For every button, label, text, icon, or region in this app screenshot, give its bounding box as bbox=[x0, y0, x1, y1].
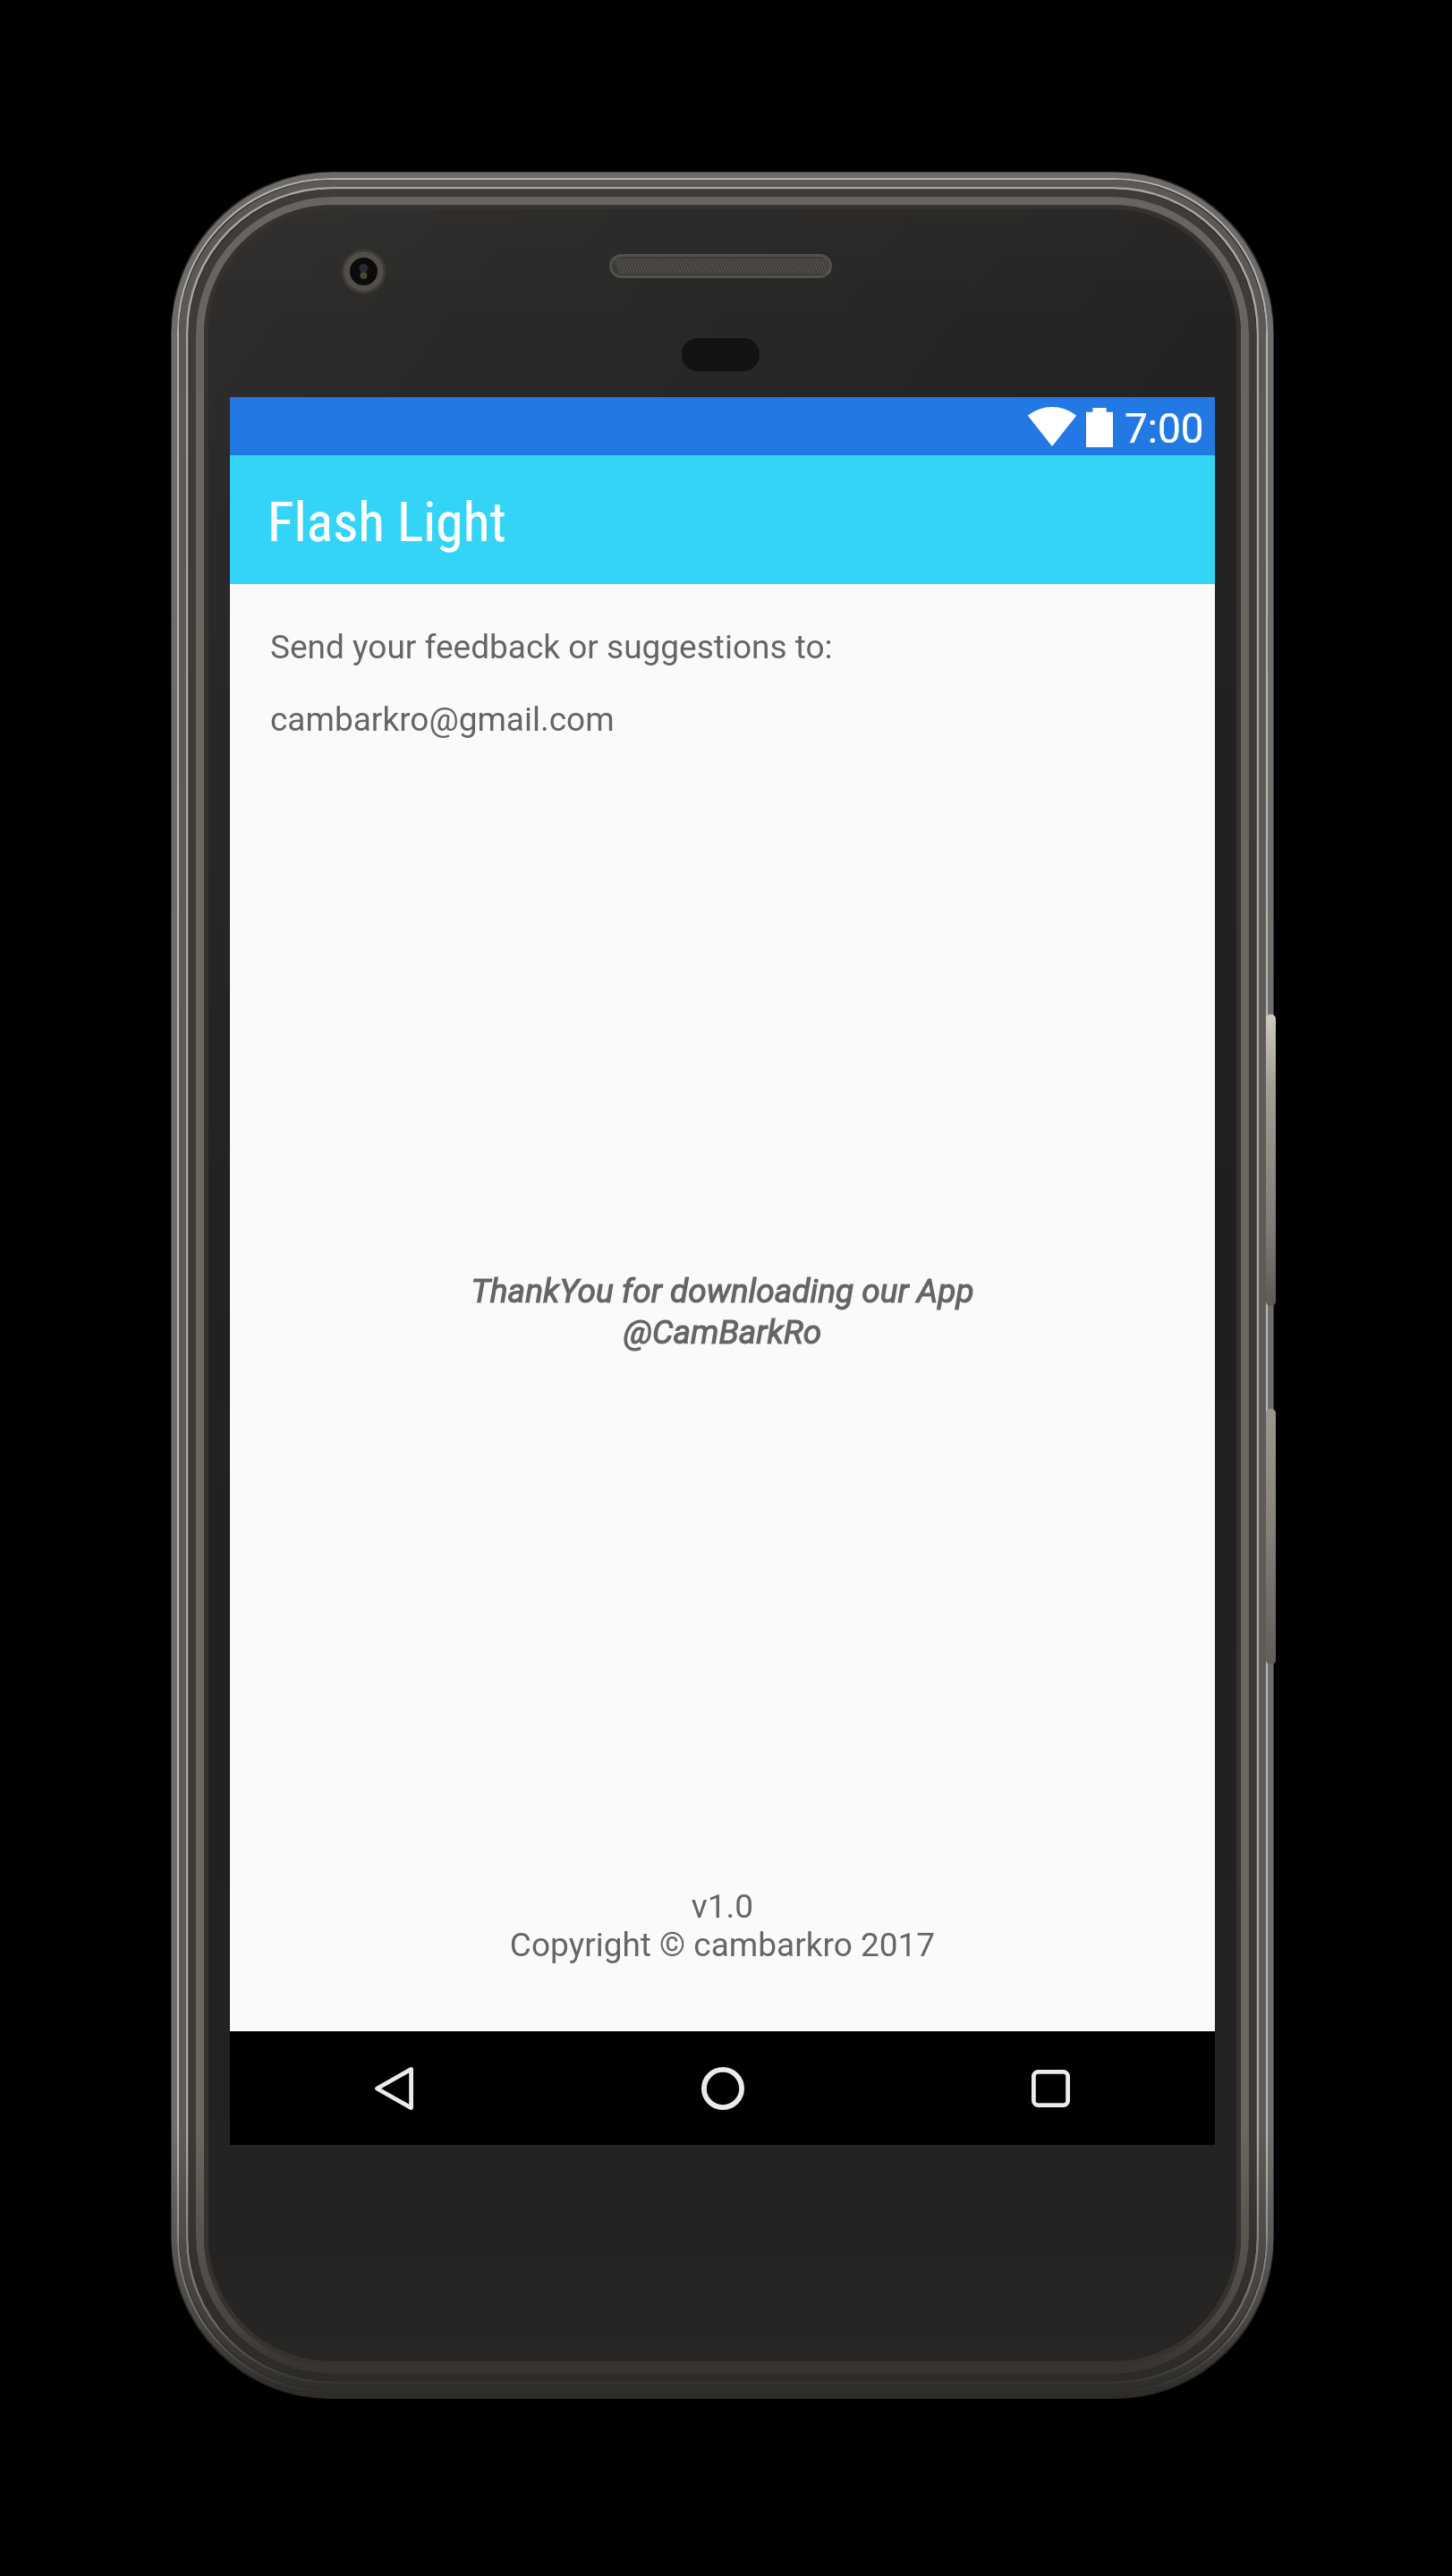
button[interactable]: Recent apps bbox=[887, 2031, 1215, 2145]
other: Wi-Fi signal bbox=[1028, 407, 1076, 446]
staticText: 7:00 bbox=[1125, 404, 1204, 453]
button[interactable]: cambarkro@gmail.com bbox=[261, 693, 624, 746]
button[interactable]: Back bbox=[230, 2031, 558, 2145]
staticText: Send your feedback or suggestions to: bbox=[270, 628, 833, 666]
other: Battery full bbox=[1086, 408, 1113, 447]
staticText: cambarkro@gmail.com bbox=[270, 700, 615, 739]
staticText: v1.0 Copyright © cambarkro 2017 bbox=[230, 1887, 1215, 1964]
button[interactable]: Home bbox=[558, 2031, 887, 2145]
staticText: ThankYou for downloading our App @CamBar… bbox=[230, 1272, 1215, 1352]
staticText: Flash Light bbox=[267, 490, 506, 555]
